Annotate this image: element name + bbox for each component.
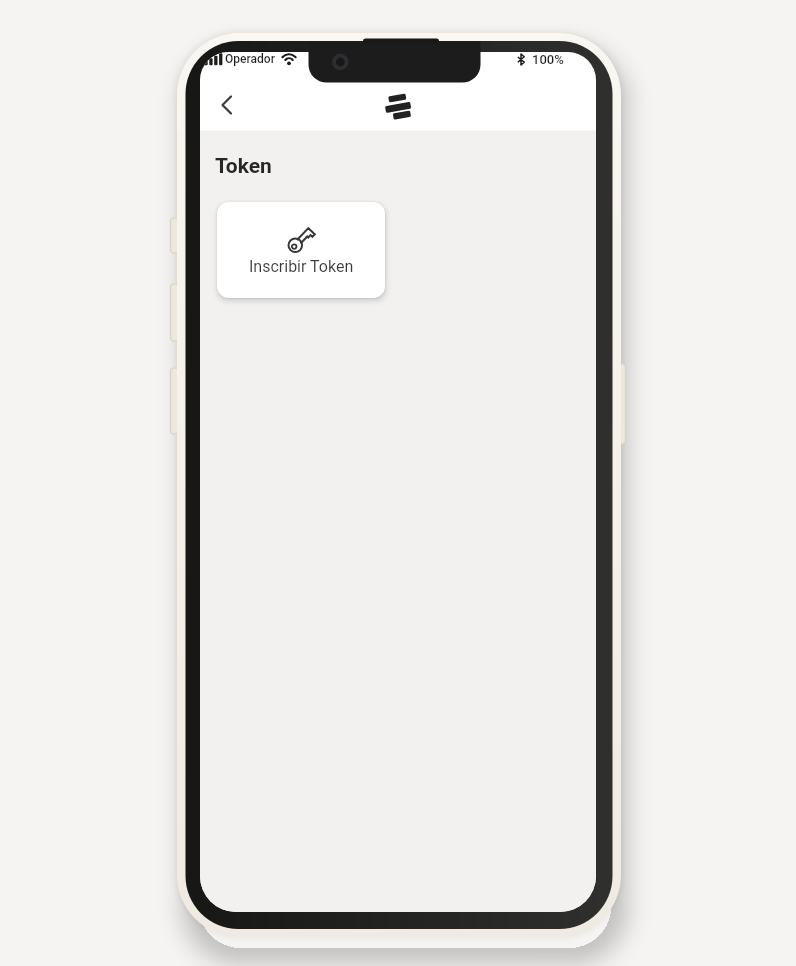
staticText: 100% (532, 52, 564, 67)
staticText: Operador (225, 52, 275, 66)
button[interactable] (210, 88, 244, 122)
staticText: Token (215, 154, 272, 179)
staticText: Inscribir Token (249, 257, 354, 276)
button[interactable]: Inscribir Token (217, 202, 385, 298)
